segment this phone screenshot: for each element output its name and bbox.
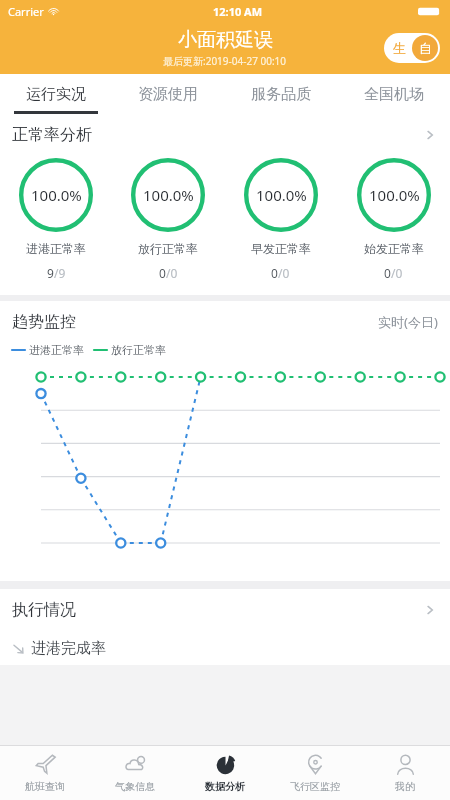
staticText: 100.0% bbox=[143, 185, 194, 205]
button[interactable]: 正常率分析 bbox=[0, 114, 450, 156]
staticText: 趋势监控 bbox=[12, 312, 76, 332]
button[interactable]: 100.0% bbox=[224, 158, 337, 281]
button[interactable]: 服务品质 bbox=[224, 74, 337, 114]
staticText: 进港正常率 bbox=[26, 241, 86, 256]
button[interactable]: 气象信息 bbox=[90, 746, 180, 800]
staticText: 0 bbox=[384, 265, 391, 281]
staticText: 服务品质 bbox=[251, 85, 311, 104]
staticText: 100.0% bbox=[31, 185, 82, 205]
staticText: 全国机场 bbox=[364, 85, 424, 104]
button[interactable]: 执行情况 bbox=[0, 589, 450, 631]
staticText: 早发正常率 bbox=[251, 241, 311, 256]
staticText: /9 bbox=[54, 265, 66, 281]
button[interactable]: 飞行区监控 bbox=[270, 746, 360, 800]
staticText: 100.0% bbox=[369, 185, 420, 205]
button[interactable]: 全国机场 bbox=[337, 74, 450, 114]
staticText: 数据分析 bbox=[205, 780, 245, 793]
staticText: 资源使用 bbox=[138, 85, 198, 104]
button[interactable]: 航班查询 bbox=[0, 746, 90, 800]
button[interactable]: 趋势监控 bbox=[0, 301, 450, 343]
staticText: 进港完成率 bbox=[31, 639, 106, 658]
staticText: 最后更新:2019-04-27 00:10 bbox=[163, 54, 287, 68]
button[interactable]: 数据分析 bbox=[180, 746, 270, 800]
button[interactable]: 资源使用 bbox=[112, 74, 224, 114]
button[interactable]: 100.0% bbox=[0, 158, 112, 281]
button[interactable]: 生 bbox=[384, 33, 440, 63]
staticText: 放行正常率 bbox=[138, 241, 198, 256]
staticText: 飞行区监控 bbox=[290, 780, 340, 793]
staticText: /0 bbox=[278, 265, 290, 281]
staticText: 气象信息 bbox=[115, 780, 155, 793]
staticText: 进港正常率 bbox=[29, 343, 84, 357]
staticText: 放行正常率 bbox=[111, 343, 166, 357]
button[interactable]: 我的 bbox=[360, 746, 450, 800]
button[interactable]: 运行实况 bbox=[0, 74, 112, 114]
button[interactable]: 100.0% bbox=[337, 158, 450, 281]
staticText: /0 bbox=[166, 265, 178, 281]
staticText: 12:10 AM bbox=[213, 4, 263, 19]
staticText: 运行实况 bbox=[26, 85, 86, 104]
staticText: 0 bbox=[271, 265, 278, 281]
staticText: Carrier bbox=[8, 4, 44, 19]
staticText: 小面积延误 bbox=[178, 28, 273, 52]
staticText: 9 bbox=[47, 265, 54, 281]
staticText: 100.0% bbox=[256, 185, 307, 205]
staticText: 航班查询 bbox=[25, 780, 65, 793]
staticText: /0 bbox=[391, 265, 403, 281]
staticText: 生 bbox=[393, 40, 406, 56]
staticText: 正常率分析 bbox=[12, 125, 92, 145]
staticText: 始发正常率 bbox=[364, 241, 424, 256]
staticText: 执行情况 bbox=[12, 600, 76, 620]
staticText: 我的 bbox=[395, 780, 415, 793]
staticText: 自 bbox=[419, 40, 432, 56]
staticText: 0 bbox=[159, 265, 166, 281]
staticText: 实时(今日) bbox=[378, 313, 438, 331]
button[interactable]: 100.0% bbox=[112, 158, 224, 281]
